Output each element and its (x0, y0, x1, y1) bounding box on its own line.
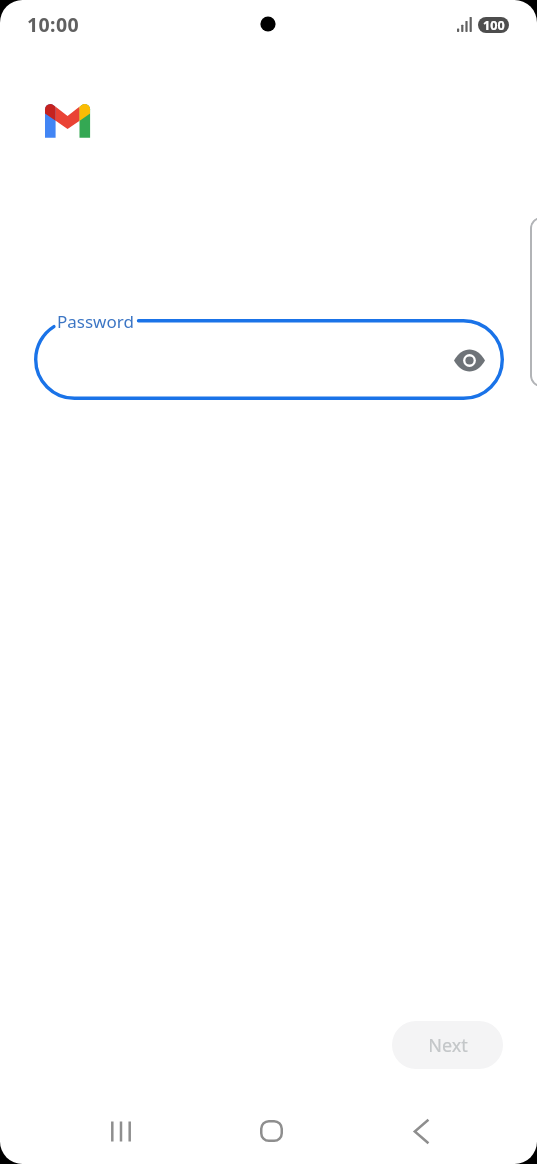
staticText: Next (428, 1033, 468, 1058)
button[interactable]: Home (247, 1107, 295, 1155)
button[interactable]: Next (392, 1021, 503, 1069)
button[interactable]: Recent apps (97, 1107, 145, 1155)
button[interactable]: Password (34, 319, 504, 400)
staticText: Password (57, 310, 134, 333)
staticText: 10:00 (27, 11, 80, 38)
button[interactable]: Show password (446, 337, 492, 383)
button[interactable]: Back (397, 1107, 445, 1155)
staticText: 100 (483, 17, 505, 33)
